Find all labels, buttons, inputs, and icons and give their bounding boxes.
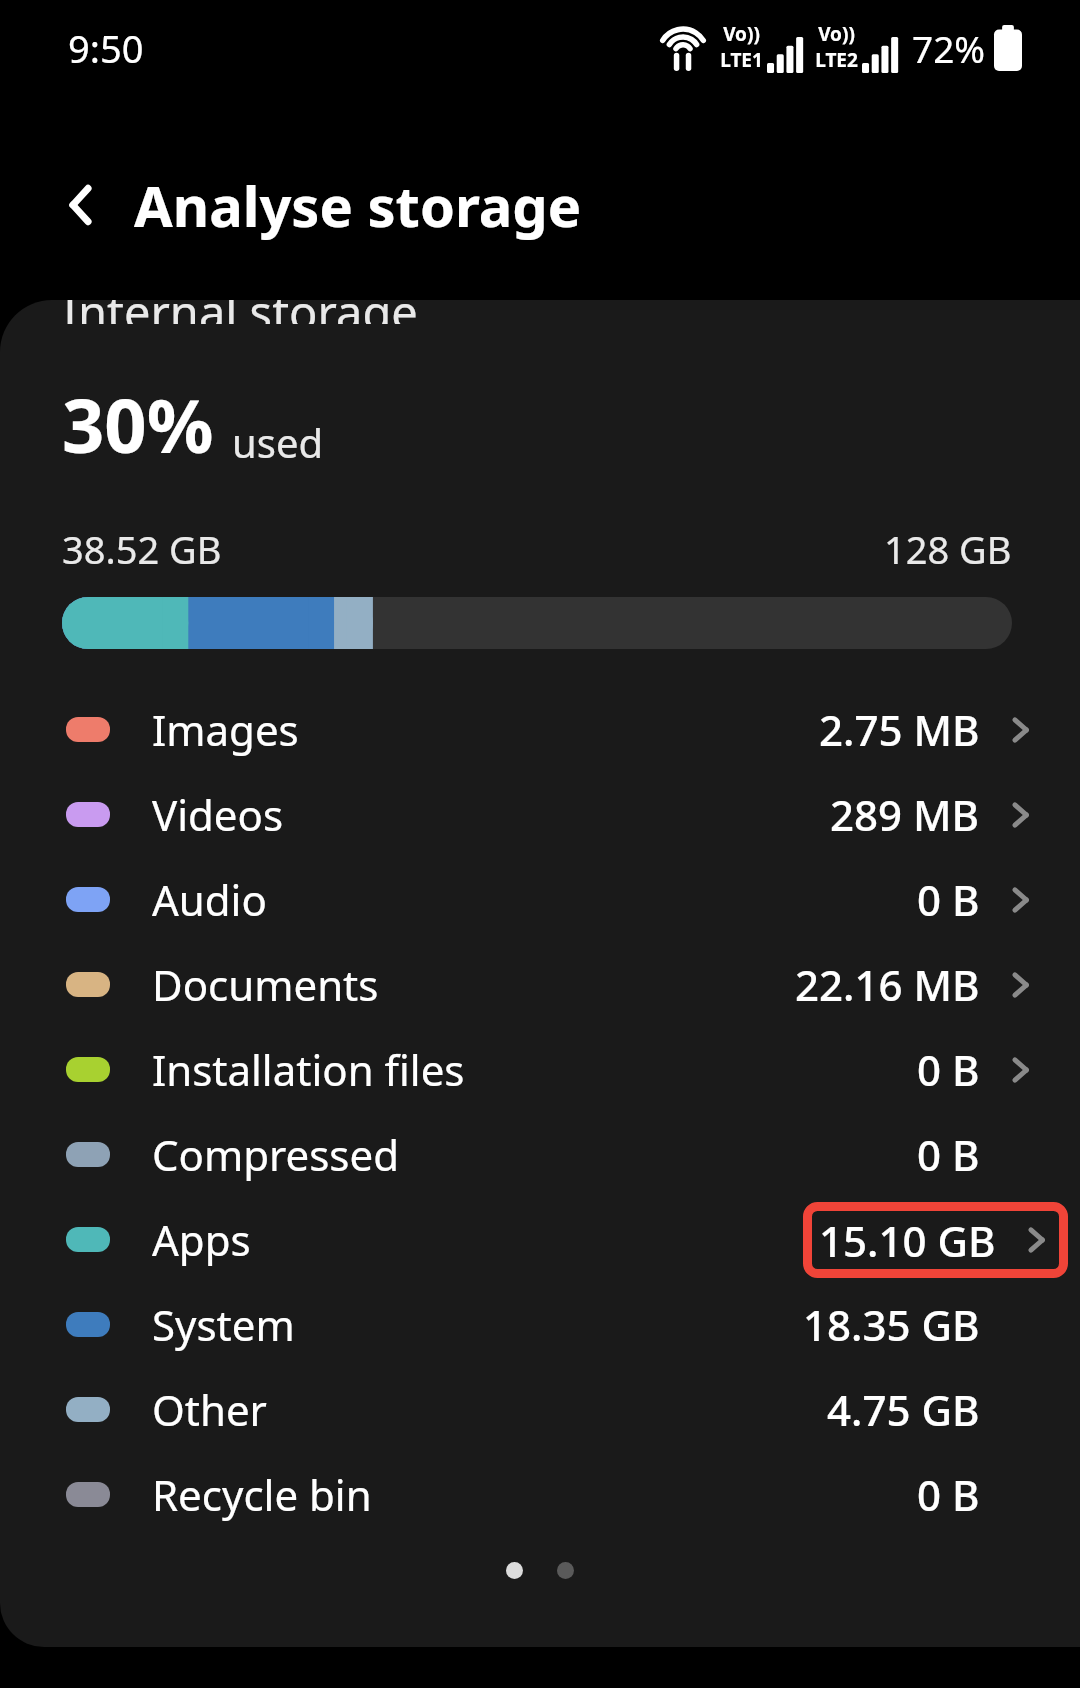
staticText: used [232,415,324,469]
staticText: Audio [152,871,267,928]
staticText: Other [152,1381,267,1438]
staticText: 2.75 MB [819,701,980,758]
staticText: Apps [152,1211,251,1268]
staticText: Internal storage [62,300,418,324]
staticText: 30% [62,374,214,475]
staticText: 0 B [917,871,980,928]
button[interactable]: Installation files [0,1027,1080,1112]
staticText: Images [152,701,299,758]
button[interactable]: Other [0,1367,1080,1452]
button[interactable]: Videos [0,772,1080,857]
staticText: LTE1 [720,47,763,73]
staticText: Recycle bin [152,1466,372,1523]
staticText: 18.35 GB [803,1296,980,1353]
staticText: 38.52 GB [62,523,222,575]
staticText: 0 B [917,1466,980,1523]
staticText: Documents [152,956,379,1013]
button[interactable]: System [0,1282,1080,1367]
staticText: 128 GB [884,523,1012,575]
staticText: 4.75 GB [827,1381,980,1438]
staticText: 15.10 GB [819,1212,996,1269]
staticText: Videos [152,786,284,843]
button[interactable]: Audio [0,857,1080,942]
staticText: 72% [912,23,986,73]
staticText: Installation files [152,1041,465,1098]
staticText: System [152,1296,295,1353]
button[interactable]: Back [44,167,120,243]
button[interactable]: Documents [0,942,1080,1027]
staticText: Compressed [152,1126,400,1183]
staticText: 0 B [917,1126,980,1183]
button[interactable]: Compressed [0,1112,1080,1197]
button[interactable]: Apps [0,1197,1080,1282]
button[interactable]: Images [0,687,1080,772]
staticText: 289 MB [830,786,980,843]
staticText: LTE2 [815,47,858,73]
staticText: 0 B [917,1041,980,1098]
staticText: Analyse storage [134,167,582,243]
button[interactable]: Recycle bin [0,1452,1080,1537]
staticText: 22.16 MB [795,956,980,1013]
staticText: 9:50 [68,22,144,74]
staticText: Vo)) [818,21,855,47]
staticText: Vo)) [723,21,760,47]
